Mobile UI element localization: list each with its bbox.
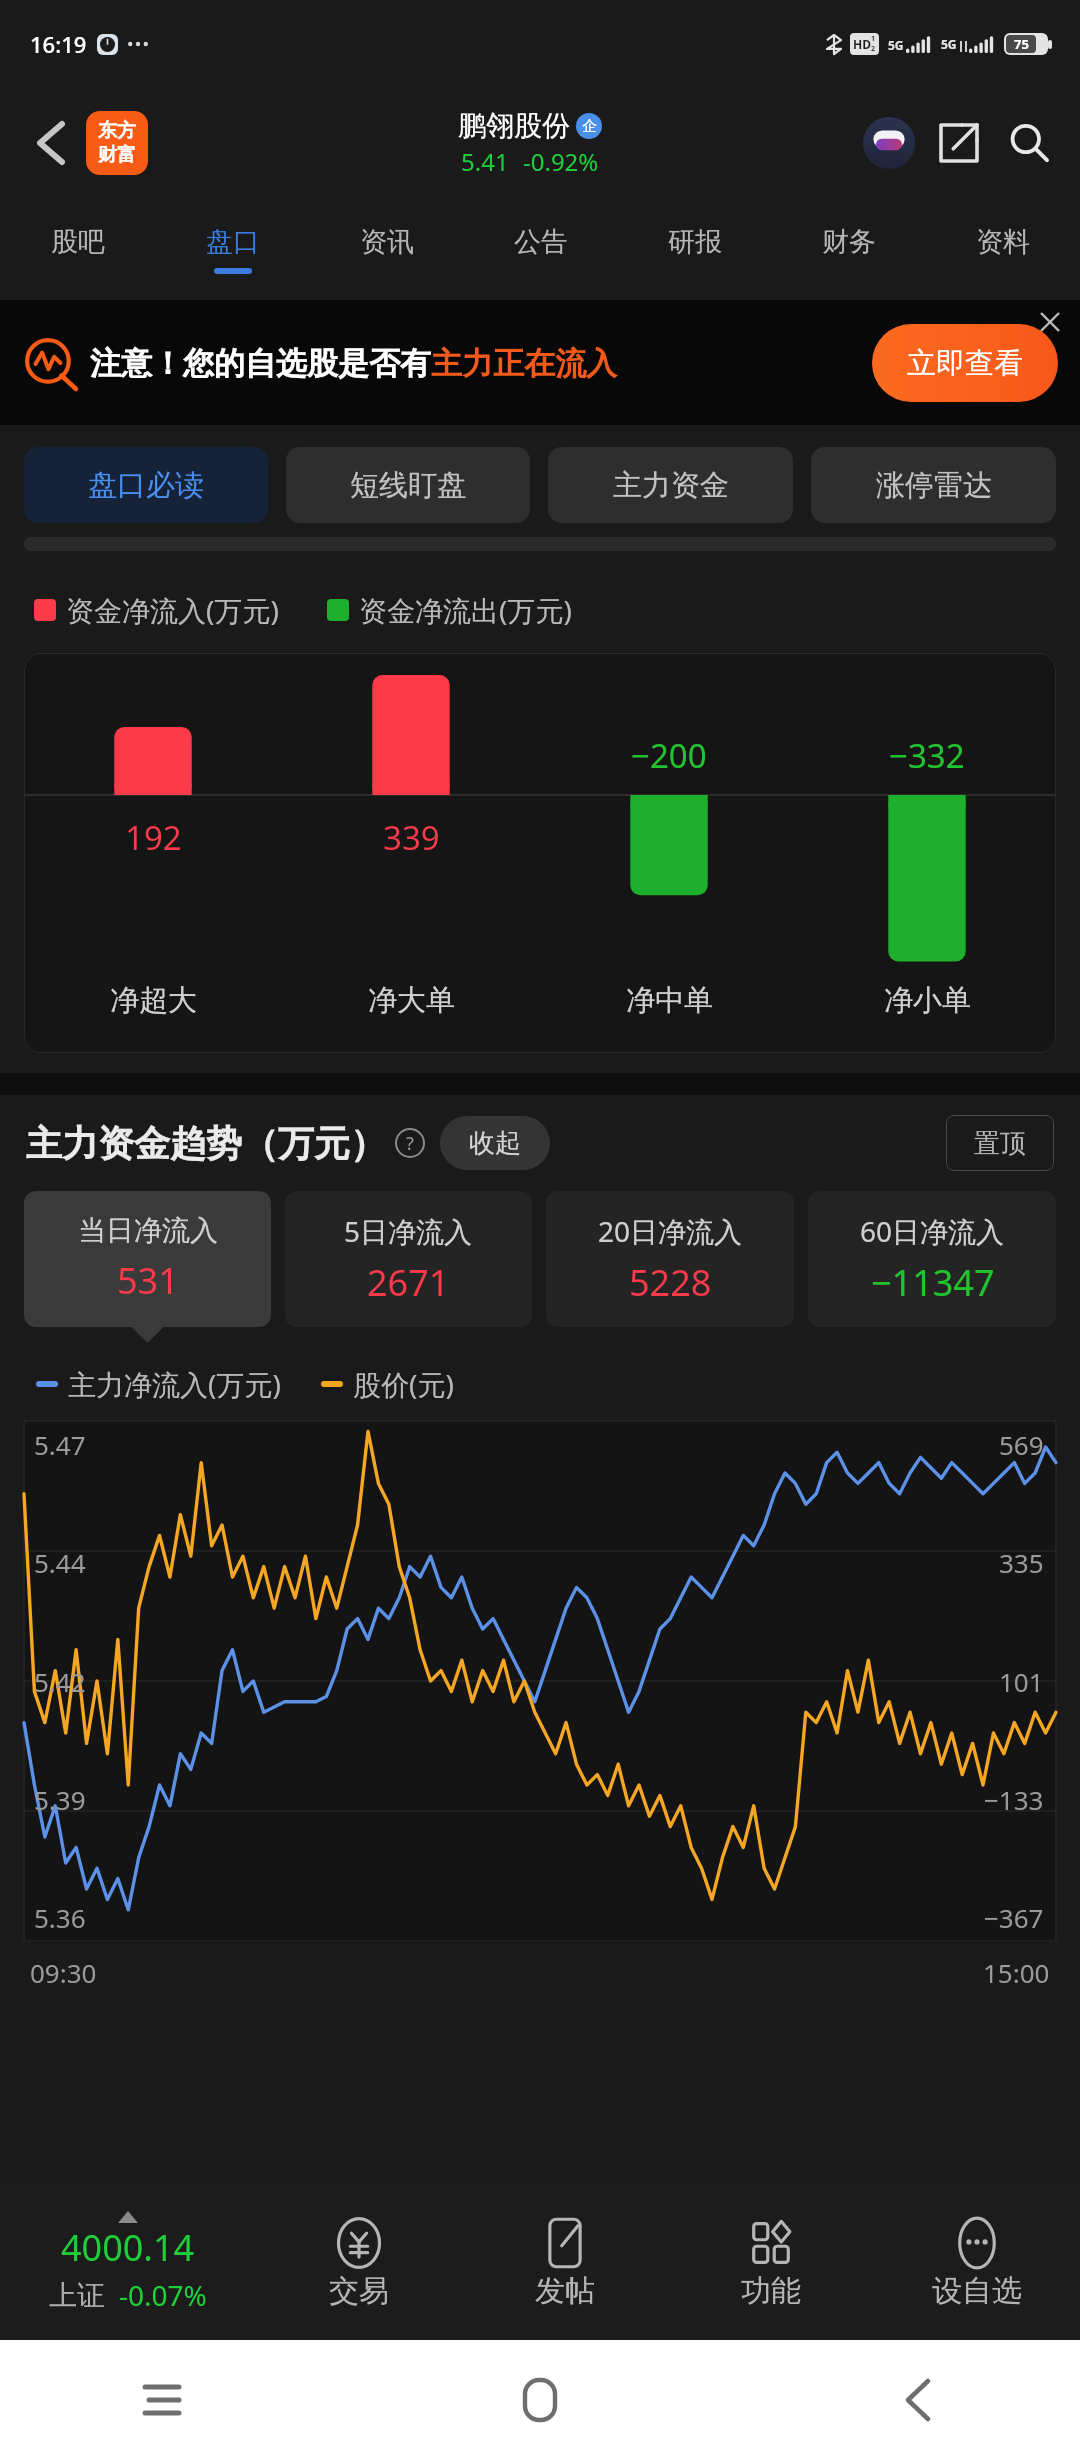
staticText: 5G [941, 36, 957, 52]
staticText: 5G [888, 37, 904, 53]
button[interactable]: 发帖 [462, 2185, 668, 2340]
staticText: 15:00 [983, 1955, 1050, 1990]
staticText: HD [853, 36, 871, 52]
staticText: 股价(元) [353, 1365, 454, 1403]
staticText: 5.41 [461, 145, 509, 178]
staticText: 短线盯盘 [350, 467, 466, 504]
staticText: 收起 [469, 1127, 521, 1160]
staticText: 192 [125, 815, 182, 860]
button[interactable]: Help [394, 1127, 426, 1159]
staticText: 发帖 [535, 2272, 595, 2310]
button[interactable]: 公告 [464, 198, 618, 300]
staticText: −133 [984, 1782, 1044, 1817]
staticText: 主力正在流入 [431, 344, 617, 383]
button[interactable]: 当日净流入 [24, 1191, 271, 1327]
button[interactable]: 设自选 [874, 2185, 1080, 2340]
staticText: 5.36 [34, 1900, 86, 1935]
staticText: 4000.14 [61, 2223, 195, 2272]
staticText: 资讯 [360, 225, 414, 259]
button[interactable]: AI assistant [858, 112, 920, 174]
staticText: 注意！您的自选股是否有 [90, 344, 431, 383]
staticText: ? [406, 1131, 414, 1156]
staticText: 上证 [49, 2278, 105, 2313]
staticText: 5228 [629, 1258, 712, 1307]
staticText: 盘口必读 [88, 467, 204, 504]
staticText: 设自选 [932, 2272, 1022, 2310]
staticText: 当日净流入 [78, 1213, 218, 1248]
button[interactable]: Search [998, 112, 1060, 174]
button[interactable]: Home [508, 2368, 572, 2432]
staticText: -0.07% [119, 2276, 207, 2314]
staticText: 2 [871, 44, 876, 54]
button[interactable]: Close ad [1032, 304, 1068, 340]
staticText: 5.39 [34, 1782, 86, 1817]
staticText: 339 [383, 815, 440, 860]
button[interactable]: Back [22, 114, 80, 172]
staticText: 资金净流入(万元) [66, 591, 279, 629]
button[interactable]: 盘口必读 [24, 447, 268, 523]
button[interactable]: 资讯 [310, 198, 464, 300]
staticText: 企 [582, 117, 597, 136]
button[interactable]: 60日净流入 [808, 1191, 1056, 1327]
button[interactable]: Back [886, 2368, 950, 2432]
staticText: −11347 [871, 1258, 995, 1307]
staticText: 主力资金趋势（万元） [26, 1121, 386, 1166]
staticText: 资料 [976, 225, 1030, 259]
button[interactable]: 资料 [926, 198, 1080, 300]
staticText: 569 [999, 1427, 1044, 1462]
button[interactable]: 研报 [618, 198, 772, 300]
staticText: 主力净流入(万元) [68, 1365, 281, 1403]
staticText: 净大单 [368, 982, 455, 1019]
staticText: 101 [999, 1664, 1044, 1699]
staticText: 净小单 [884, 982, 971, 1019]
button[interactable]: Share [928, 112, 990, 174]
button[interactable]: Recents [130, 2368, 194, 2432]
staticText: 335 [999, 1545, 1044, 1580]
staticText: 股吧 [51, 225, 105, 259]
staticText: 净超大 [110, 982, 197, 1019]
staticText: 涨停雷达 [876, 467, 992, 504]
staticText: 财富 [98, 143, 136, 167]
staticText: 20日净流入 [598, 1212, 743, 1250]
staticText: −367 [984, 1900, 1044, 1935]
staticText: 交易 [329, 2272, 389, 2310]
button[interactable]: 置顶 [946, 1115, 1054, 1171]
button[interactable]: 交易 [256, 2185, 462, 2340]
staticText: 60日净流入 [860, 1212, 1005, 1250]
button[interactable]: 涨停雷达 [811, 447, 1056, 523]
staticText: 531 [117, 1256, 179, 1305]
staticText: 净中单 [626, 982, 713, 1019]
button[interactable]: 盘口 [155, 198, 310, 300]
button[interactable]: 短线盯盘 [286, 447, 530, 523]
staticText: 鹏翎股份 [458, 108, 570, 143]
staticText: 09:30 [30, 1955, 97, 1990]
button[interactable]: 财务 [772, 198, 926, 300]
button[interactable]: 4000.14 [0, 2211, 256, 2314]
staticText: 75 [1014, 35, 1029, 53]
staticText: 功能 [741, 2272, 801, 2310]
staticText: −332 [889, 733, 965, 778]
staticText: -0.92% [523, 145, 599, 178]
staticText: 置顶 [974, 1127, 1026, 1160]
staticText: 研报 [668, 225, 722, 259]
button[interactable]: 东方 [86, 111, 148, 175]
staticText: 16:19 [30, 29, 87, 59]
staticText: 公告 [514, 225, 568, 259]
staticText: 2671 [367, 1258, 450, 1307]
staticText: 立即查看 [907, 345, 1023, 382]
staticText: 5日净流入 [344, 1212, 473, 1250]
button[interactable]: 5日净流入 [285, 1191, 532, 1327]
button[interactable]: 20日净流入 [546, 1191, 794, 1327]
staticText: 5.42 [34, 1664, 86, 1699]
button[interactable]: 功能 [668, 2185, 874, 2340]
staticText: −200 [631, 733, 707, 778]
button[interactable]: 主力资金 [548, 447, 793, 523]
button[interactable]: 收起 [440, 1116, 550, 1170]
staticText: 5.44 [34, 1545, 86, 1580]
staticText: 1 [871, 34, 876, 44]
staticText: 主力资金 [613, 467, 729, 504]
button[interactable]: 股吧 [0, 198, 155, 300]
staticText: 资金净流出(万元) [359, 591, 572, 629]
button[interactable]: 立即查看 [872, 324, 1058, 402]
staticText: 财务 [822, 225, 876, 259]
